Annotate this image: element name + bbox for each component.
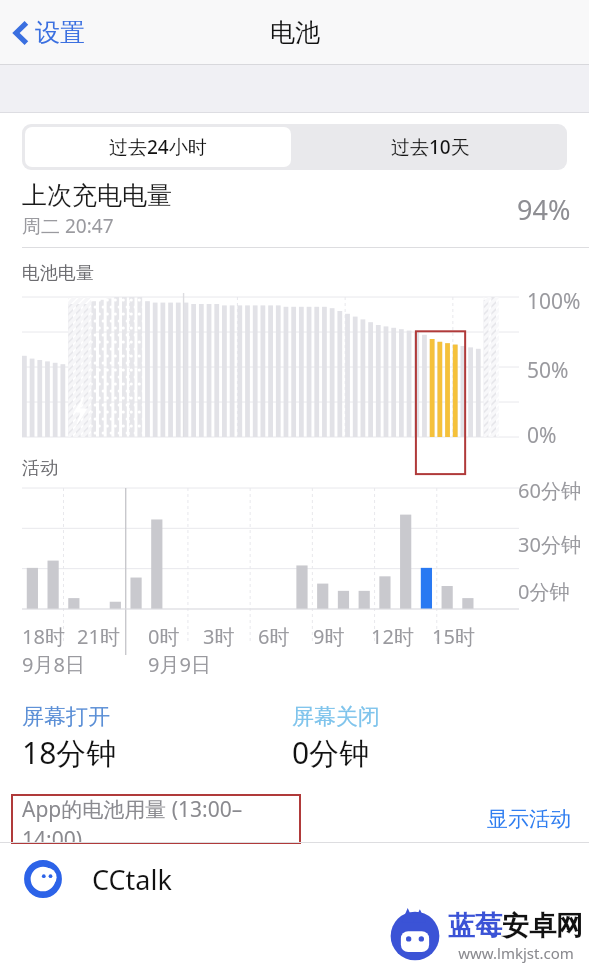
staticText: 上次充电电量 xyxy=(22,180,172,211)
staticText: 18时 xyxy=(22,623,65,650)
staticText: 3时 xyxy=(203,623,235,650)
staticText: 9月9日 xyxy=(148,651,211,678)
staticText: www.lmkjst.com xyxy=(458,943,574,963)
button[interactable]: CCtalk xyxy=(0,843,589,915)
button[interactable]: 上次充电电量 xyxy=(0,170,589,248)
staticText: 60分钟 xyxy=(518,477,581,504)
staticText: 30分钟 xyxy=(518,531,581,558)
staticText: 0时 xyxy=(148,623,180,650)
staticText: 50% xyxy=(527,356,569,385)
staticText: 周二 20:47 xyxy=(22,213,114,239)
staticText: 12时 xyxy=(371,623,414,650)
staticText: 屏幕关闭 xyxy=(292,703,380,731)
staticText: 设置 xyxy=(35,17,85,48)
staticText: 屏幕打开 xyxy=(22,703,110,731)
staticText: 9月8日 xyxy=(22,651,85,678)
button[interactable]: 过去24小时 xyxy=(25,127,291,167)
staticText: 94% xyxy=(517,191,571,228)
button[interactable]: 过去10天 xyxy=(294,124,567,170)
staticText: 蓝莓 xyxy=(448,909,502,943)
staticText: 18分钟 xyxy=(22,732,117,773)
staticText: CCtalk xyxy=(92,861,172,898)
staticText: 0% xyxy=(527,421,557,450)
button[interactable]: 屏幕关闭 xyxy=(292,703,380,773)
staticText: 显示活动 xyxy=(487,806,571,832)
staticText: 0分钟 xyxy=(292,732,370,773)
staticText: 过去24小时 xyxy=(109,134,207,160)
button[interactable]: 设置 xyxy=(8,11,89,54)
staticText: 9时 xyxy=(313,623,345,650)
button[interactable]: 显示活动 xyxy=(487,806,571,832)
staticText: 100% xyxy=(527,287,581,316)
staticText: 15时 xyxy=(432,623,475,650)
staticText: 6时 xyxy=(258,623,290,650)
staticText: 21时 xyxy=(77,623,120,650)
staticText: 过去10天 xyxy=(391,134,470,160)
staticText: 电池 xyxy=(270,17,320,48)
staticText: 0分钟 xyxy=(518,578,570,605)
button[interactable]: 屏幕打开 xyxy=(22,703,292,773)
staticText: 安卓网 xyxy=(502,909,583,943)
staticText: 电池电量 xyxy=(22,262,94,285)
staticText: App的电池用量 (13:00–14:00) xyxy=(22,795,300,843)
staticText: 活动 xyxy=(22,457,58,480)
